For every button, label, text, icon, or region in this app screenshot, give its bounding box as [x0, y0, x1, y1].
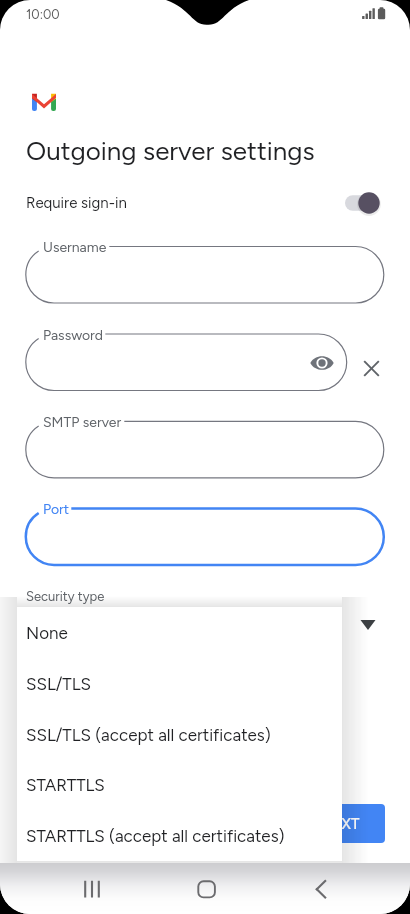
staticText: SMTP server — [43, 414, 122, 431]
button[interactable]: None — [17, 607, 342, 658]
staticText: Username — [43, 239, 107, 256]
button[interactable]: Expand security type — [356, 612, 380, 636]
button[interactable]: SMTP server — [0, 0, 410, 914]
button[interactable]: SSL/TLS — [17, 658, 342, 709]
staticText: Security type — [26, 589, 105, 605]
button[interactable]: STARTTLS — [17, 759, 342, 810]
staticText: 10:00 — [26, 7, 60, 23]
staticText: STARTTLS (accept all certificates) — [26, 826, 285, 846]
button[interactable]: Recent apps — [72, 871, 110, 909]
button[interactable]: Show password — [308, 349, 336, 377]
staticText: None — [26, 623, 68, 643]
button[interactable]: NEXT — [296, 804, 385, 843]
button[interactable]: Password — [0, 0, 410, 914]
staticText: SSL/TLS (accept all certificates) — [26, 725, 271, 745]
staticText: SSL/TLS — [26, 674, 91, 694]
button[interactable]: Back — [302, 871, 340, 909]
staticText: Password — [43, 327, 104, 344]
button[interactable]: Port — [0, 0, 410, 914]
staticText: Port — [43, 501, 70, 518]
button[interactable]: STARTTLS (accept all certificates) — [17, 810, 342, 861]
staticText: NEXT — [321, 815, 360, 833]
button[interactable]: SSL/TLS (accept all certificates) — [17, 709, 342, 760]
button[interactable]: Require sign-in — [345, 185, 380, 221]
staticText: STARTTLS — [26, 775, 105, 795]
staticText: Require sign-in — [26, 194, 127, 212]
button[interactable]: Clear — [357, 354, 386, 383]
staticText: Outgoing server settings — [26, 135, 315, 166]
button[interactable]: Username — [0, 0, 410, 914]
button[interactable]: Require sign-in — [0, 185, 410, 221]
button[interactable]: Home — [187, 871, 225, 909]
